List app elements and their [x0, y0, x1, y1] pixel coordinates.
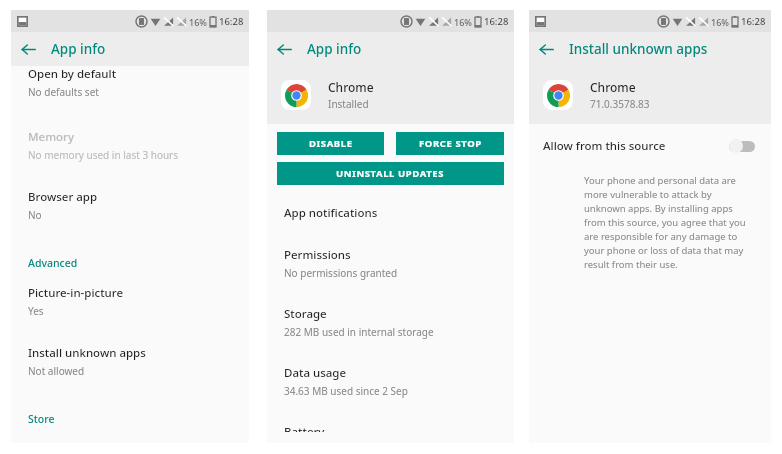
- staticText: Battery: [284, 424, 325, 432]
- staticText: 16:28: [219, 15, 244, 28]
- button[interactable]: Data usage: [267, 354, 514, 409]
- staticText: 282 MB used in internal storage: [284, 325, 434, 339]
- button[interactable]: Back: [529, 32, 563, 66]
- staticText: App notifications: [284, 205, 378, 221]
- button[interactable]: Memory: [11, 118, 249, 173]
- staticText: Allow from this source: [543, 138, 729, 154]
- staticText: 71.0.3578.83: [590, 97, 650, 111]
- staticText: Install unknown apps: [28, 345, 146, 361]
- staticText: Chrome: [328, 79, 374, 95]
- staticText: 16%: [454, 16, 472, 28]
- button[interactable]: Picture-in-picture: [11, 274, 249, 329]
- staticText: App info: [307, 40, 362, 58]
- staticText: No permissions granted: [284, 266, 398, 280]
- staticText: Installed: [328, 97, 369, 111]
- staticText: FORCE STOP: [419, 137, 482, 150]
- staticText: Open by default: [28, 66, 117, 82]
- button[interactable]: Back: [267, 32, 301, 66]
- staticText: Data usage: [284, 365, 347, 381]
- staticText: Store: [28, 412, 55, 426]
- button[interactable]: Battery: [267, 413, 514, 443]
- button[interactable]: Permissions: [267, 236, 514, 291]
- staticText: 16%: [711, 16, 729, 28]
- button[interactable]: Open by default: [11, 66, 249, 110]
- button[interactable]: App notifications: [267, 194, 514, 232]
- staticText: Permissions: [284, 247, 351, 263]
- staticText: DISABLE: [309, 137, 353, 150]
- button[interactable]: DISABLE: [277, 132, 384, 155]
- staticText: Memory: [28, 129, 75, 145]
- staticText: UNINSTALL UPDATES: [336, 167, 445, 180]
- staticText: No memory used in last 3 hours: [28, 148, 179, 162]
- staticText: Install unknown apps: [569, 40, 708, 58]
- button[interactable]: FORCE STOP: [396, 132, 504, 155]
- staticText: 34.63 MB used since 2 Sep: [284, 384, 408, 398]
- staticText: Browser app: [28, 189, 98, 205]
- staticText: Chrome: [590, 79, 636, 95]
- staticText: 16:28: [484, 15, 509, 28]
- staticText: No: [28, 208, 42, 222]
- staticText: Storage: [284, 306, 327, 322]
- button[interactable]: Browser app: [11, 178, 249, 233]
- staticText: Picture-in-picture: [28, 285, 124, 301]
- button[interactable]: Storage: [267, 295, 514, 350]
- staticText: 16%: [189, 16, 207, 28]
- button[interactable]: Back: [11, 32, 45, 66]
- staticText: No defaults set: [28, 85, 99, 99]
- staticText: Not allowed: [28, 364, 85, 378]
- staticText: Advanced: [28, 256, 78, 270]
- button[interactable]: Allow from this source: [529, 124, 771, 168]
- staticText: App info: [51, 40, 106, 58]
- button[interactable]: UNINSTALL UPDATES: [277, 162, 504, 185]
- staticText: 16:28: [741, 15, 766, 28]
- button[interactable]: Install unknown apps: [11, 334, 249, 389]
- staticText: Your phone and personal data are more vu…: [584, 174, 753, 271]
- staticText: Yes: [28, 304, 44, 318]
